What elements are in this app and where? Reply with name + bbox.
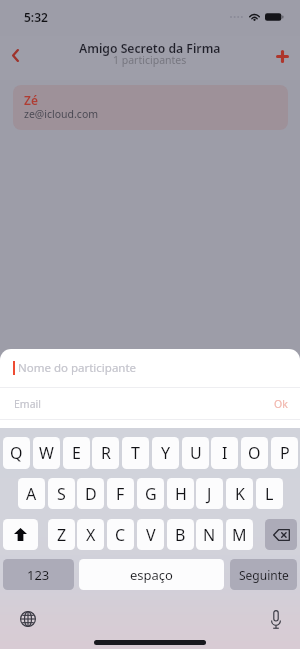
staticText: O bbox=[248, 442, 261, 464]
button[interactable]: E bbox=[63, 437, 90, 469]
staticText: P bbox=[280, 442, 290, 464]
button[interactable]: X bbox=[77, 519, 104, 550]
button[interactable]: Ok bbox=[262, 397, 300, 411]
button[interactable]: V bbox=[137, 519, 164, 550]
button[interactable]: B bbox=[167, 519, 194, 550]
button[interactable]: Y bbox=[152, 437, 179, 469]
staticText: E bbox=[72, 442, 81, 464]
staticText: T bbox=[131, 442, 140, 464]
button[interactable]: J bbox=[196, 478, 223, 509]
button[interactable]: U bbox=[182, 437, 209, 469]
staticText: R bbox=[101, 442, 111, 464]
staticText: ze@icloud.com bbox=[24, 107, 99, 121]
button[interactable]: M bbox=[226, 519, 253, 550]
button[interactable]: R bbox=[92, 437, 119, 469]
staticText: 1 participantes bbox=[113, 53, 187, 67]
staticText: espaço bbox=[130, 566, 173, 584]
button[interactable]: S bbox=[48, 478, 75, 509]
button[interactable]: L bbox=[256, 478, 283, 509]
staticText: F bbox=[116, 483, 125, 505]
button[interactable]: K bbox=[226, 478, 253, 509]
staticText: J bbox=[207, 483, 212, 505]
button[interactable]: A bbox=[18, 478, 45, 509]
staticText: S bbox=[57, 483, 66, 505]
staticText: D bbox=[85, 483, 97, 505]
staticText: Nome do participante bbox=[18, 360, 137, 376]
button[interactable]: I bbox=[211, 437, 238, 469]
button[interactable]: H bbox=[167, 478, 194, 509]
staticText: Email bbox=[14, 397, 41, 411]
staticText: Z bbox=[57, 524, 67, 546]
staticText: L bbox=[265, 483, 274, 505]
button[interactable]: Shift bbox=[3, 519, 38, 550]
staticText: H bbox=[175, 483, 187, 505]
staticText: M bbox=[232, 524, 247, 546]
button[interactable]: espaço bbox=[79, 559, 224, 590]
button[interactable]: C bbox=[107, 519, 134, 550]
button[interactable]: N bbox=[196, 519, 223, 550]
staticText: Amigo Secreto da Firma bbox=[79, 40, 221, 57]
button[interactable]: G bbox=[137, 478, 164, 509]
staticText: X bbox=[86, 524, 96, 546]
button[interactable]: 123 bbox=[3, 559, 74, 590]
staticText: V bbox=[146, 524, 156, 546]
button[interactable]: Seguinte bbox=[230, 559, 297, 590]
staticText: Ok bbox=[274, 397, 288, 411]
staticText: Y bbox=[161, 442, 171, 464]
button[interactable]: Z bbox=[48, 519, 75, 550]
button[interactable]: Zé bbox=[13, 85, 288, 130]
button[interactable]: F bbox=[107, 478, 134, 509]
button[interactable]: Backspace bbox=[265, 519, 297, 550]
button[interactable]: W bbox=[33, 437, 60, 469]
staticText: N bbox=[203, 524, 216, 546]
button[interactable]: Add participant bbox=[266, 36, 300, 80]
button[interactable]: Change keyboard bbox=[15, 606, 41, 632]
button[interactable]: Back bbox=[0, 36, 34, 80]
staticText: C bbox=[115, 524, 126, 546]
button[interactable]: D bbox=[77, 478, 104, 509]
staticText: Zé bbox=[24, 92, 38, 108]
button[interactable]: Q bbox=[3, 437, 30, 469]
button[interactable]: P bbox=[271, 437, 298, 469]
staticText: 123 bbox=[27, 566, 50, 584]
staticText: G bbox=[145, 483, 157, 505]
staticText: A bbox=[26, 483, 37, 505]
button[interactable]: O bbox=[241, 437, 268, 469]
staticText: K bbox=[235, 483, 245, 505]
staticText: 5:32 bbox=[24, 9, 48, 25]
staticText: Seguinte bbox=[239, 567, 289, 583]
button[interactable]: T bbox=[122, 437, 149, 469]
button[interactable]: Dictation bbox=[263, 606, 289, 632]
staticText: Q bbox=[10, 442, 23, 464]
staticText: U bbox=[190, 442, 202, 464]
staticText: I bbox=[222, 442, 228, 464]
staticText: B bbox=[175, 524, 186, 546]
staticText: W bbox=[39, 442, 54, 464]
